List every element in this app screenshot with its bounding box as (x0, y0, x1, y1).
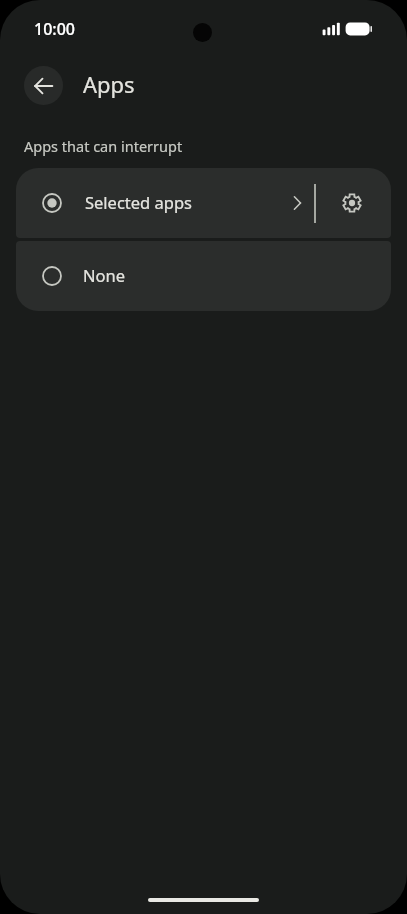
button[interactable]: Settings (320, 168, 384, 238)
staticText: None (83, 264, 126, 286)
staticText: Selected apps (85, 191, 193, 213)
staticText: Apps that can interrupt (24, 136, 183, 156)
button[interactable]: Selected apps (16, 168, 312, 238)
button[interactable]: Back (24, 66, 63, 105)
staticText: Apps (83, 69, 135, 99)
button[interactable]: None (16, 241, 391, 311)
staticText: 10:00 (34, 18, 75, 40)
